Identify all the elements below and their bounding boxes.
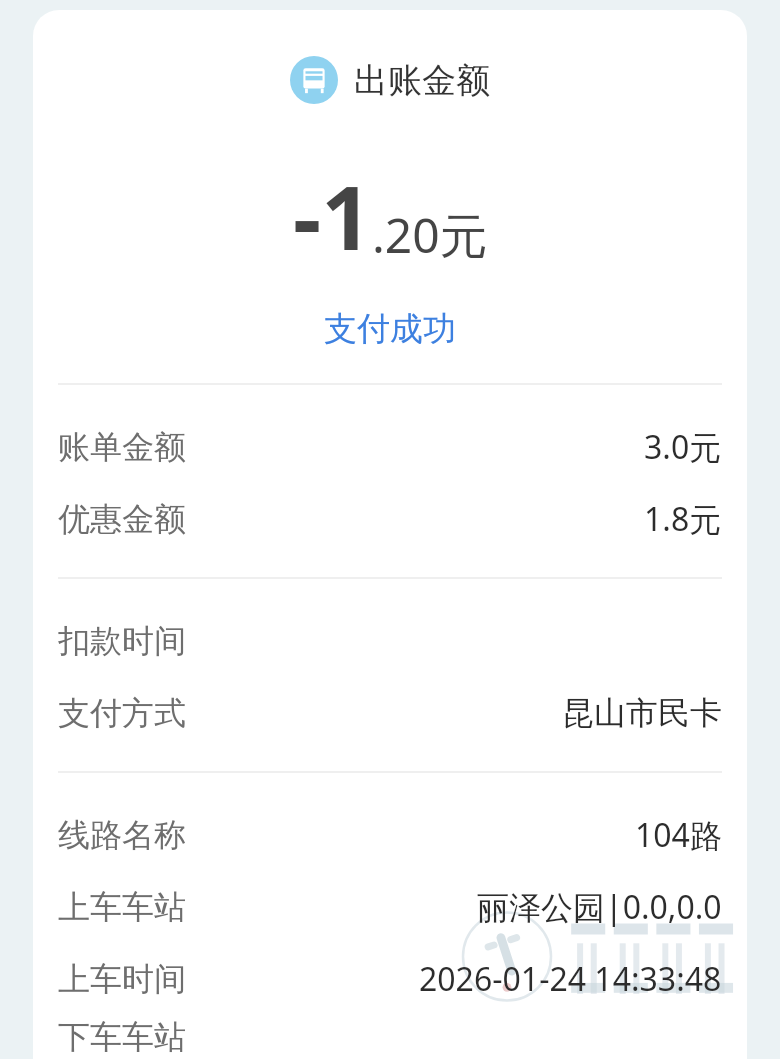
staticText: 上车车站 xyxy=(58,887,186,927)
button[interactable]: 上车时间 xyxy=(33,943,747,1015)
button[interactable]: 扣款时间 xyxy=(33,605,747,677)
staticText: 104路 xyxy=(635,813,722,857)
staticText: 出账金额 xyxy=(354,59,490,102)
staticText: 支付成功 xyxy=(324,308,456,350)
other: Bus xyxy=(290,56,338,104)
staticText: 下车车站 xyxy=(58,1017,186,1057)
button[interactable]: 下车车站 xyxy=(33,1015,747,1059)
staticText: .20元 xyxy=(372,202,488,268)
button[interactable]: 账单金额 xyxy=(33,411,747,483)
staticText: 丽泽公园|0.0,0.0 xyxy=(477,885,722,929)
staticText: 上车时间 xyxy=(58,959,186,999)
staticText: 昆山市民卡 xyxy=(562,693,722,733)
button[interactable]: 支付成功 xyxy=(33,308,747,350)
staticText: -1 xyxy=(293,156,372,276)
staticText: 优惠金额 xyxy=(58,499,186,539)
staticText: 扣款时间 xyxy=(58,621,186,661)
button[interactable]: 优惠金额 xyxy=(33,483,747,555)
staticText: 账单金额 xyxy=(58,427,186,467)
staticText: 1.8元 xyxy=(644,497,722,541)
button[interactable]: Bus xyxy=(33,56,747,104)
staticText: 支付方式 xyxy=(58,693,186,733)
staticText: 3.0元 xyxy=(644,425,722,469)
button[interactable]: 支付方式 xyxy=(33,677,747,749)
button[interactable]: 上车车站 xyxy=(33,871,747,943)
staticText: 线路名称 xyxy=(58,815,186,855)
button[interactable]: 线路名称 xyxy=(33,799,747,871)
staticText: 2026-01-24 14:33:48 xyxy=(419,957,722,1001)
